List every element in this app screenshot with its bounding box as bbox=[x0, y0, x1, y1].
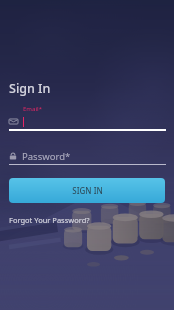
button[interactable]: Password bbox=[0, 149, 174, 165]
button[interactable]: Forgot Your Password? bbox=[0, 214, 96, 228]
staticText: Sign In bbox=[9, 80, 51, 97]
button[interactable]: Email* bbox=[0, 105, 174, 131]
other: Password bbox=[9, 152, 17, 160]
staticText: SIGN IN bbox=[72, 185, 103, 196]
staticText: Email* bbox=[23, 105, 42, 113]
other: Email bbox=[9, 117, 18, 126]
staticText: Forgot Your Password? bbox=[9, 215, 90, 225]
button[interactable]: SIGN IN bbox=[9, 178, 165, 203]
staticText: Password* bbox=[22, 150, 71, 163]
